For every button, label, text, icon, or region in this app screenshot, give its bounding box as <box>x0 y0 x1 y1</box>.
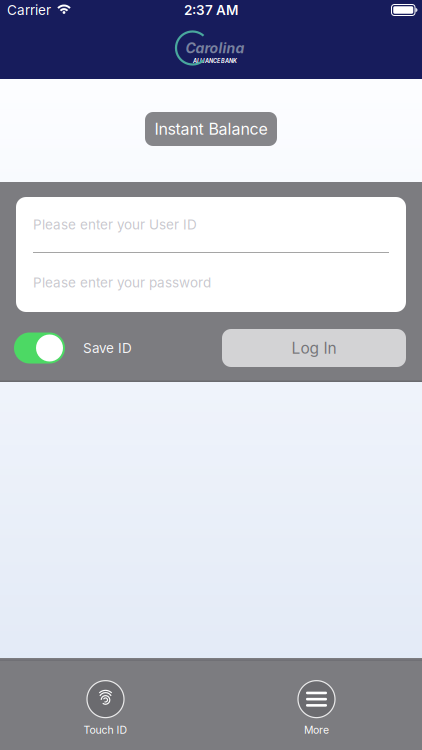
button[interactable]: Instant Balance <box>145 112 277 146</box>
staticText: Touch ID <box>83 724 127 736</box>
staticText: More <box>304 724 329 736</box>
staticText: Please enter your password <box>33 274 211 291</box>
staticText: Instant Balance <box>154 119 267 139</box>
button[interactable]: Password <box>16 253 406 312</box>
staticText: Carolina <box>185 40 244 57</box>
staticText: Please enter your User ID <box>33 216 197 233</box>
staticText: ALLIANCE BANK <box>193 58 237 64</box>
button[interactable]: More <box>211 681 422 736</box>
staticText: Log In <box>291 339 336 357</box>
button[interactable]: User ID <box>16 197 406 252</box>
staticText: Carrier <box>7 2 51 18</box>
button[interactable]: Touch ID <box>0 681 211 736</box>
button[interactable]: Save ID <box>14 332 65 363</box>
button[interactable]: Log In <box>222 329 406 367</box>
staticText: Save ID <box>83 340 132 356</box>
staticText: 2:37 AM <box>184 2 238 18</box>
